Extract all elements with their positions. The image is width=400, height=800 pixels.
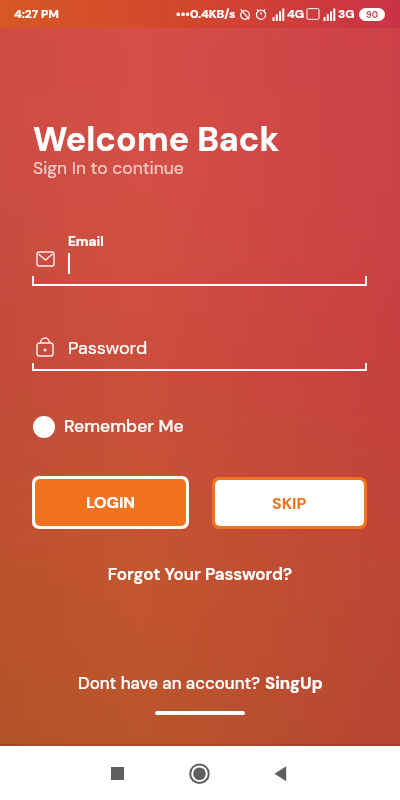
staticText: 3G xyxy=(338,6,355,22)
staticText: Password xyxy=(68,336,148,359)
button[interactable]: Back xyxy=(264,758,296,790)
staticText: Remember Me xyxy=(64,415,184,438)
button[interactable]: Home xyxy=(183,758,215,790)
staticText: LOGIN xyxy=(86,492,135,513)
button[interactable]: SKIP xyxy=(215,480,364,526)
staticText: SKIP xyxy=(272,493,307,514)
button[interactable]: Remember Me xyxy=(33,415,184,438)
staticText: 4:27 PM xyxy=(14,6,59,22)
staticText: Email xyxy=(68,233,104,251)
staticText: Sign In to continue xyxy=(33,157,184,180)
staticText: SingUp xyxy=(265,672,323,694)
button[interactable]: LOGIN xyxy=(35,479,186,526)
staticText: Dont have an account? xyxy=(78,672,265,694)
staticText: •••0.4KB/s xyxy=(176,6,236,22)
staticText: Welcome Back xyxy=(33,117,280,161)
staticText: Forgot Your Password? xyxy=(0,563,400,585)
button[interactable]: Recent apps xyxy=(101,758,133,790)
staticText: 90 xyxy=(366,9,379,21)
staticText: 4G xyxy=(287,6,305,22)
